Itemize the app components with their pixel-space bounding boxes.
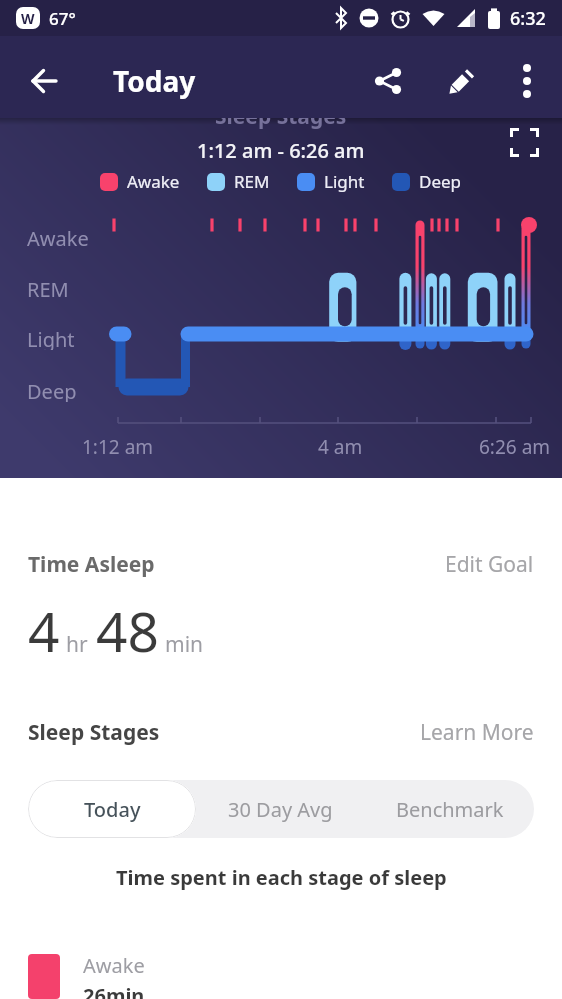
staticText: 1:12 am - 6:26 am <box>197 137 365 164</box>
staticText: 30 Day Avg <box>228 796 333 823</box>
button[interactable] <box>504 122 544 162</box>
button[interactable]: Learn More <box>420 718 534 747</box>
staticText: 4 <box>28 593 60 668</box>
button[interactable]: 30 Day Avg <box>196 780 365 838</box>
staticText: 48 <box>96 593 159 668</box>
staticText: 4 am <box>318 434 363 460</box>
staticText: Deep <box>27 378 77 402</box>
staticText: 26min <box>83 982 145 999</box>
staticText: Sleep Stages <box>215 118 347 131</box>
staticText: 1:12 am <box>82 434 154 460</box>
staticText: Awake <box>27 225 89 249</box>
staticText: Today <box>84 796 141 823</box>
staticText: Awake <box>127 170 180 193</box>
staticText: 6:26 am <box>479 434 551 460</box>
staticText: Deep <box>419 170 462 193</box>
button[interactable] <box>501 44 553 118</box>
staticText: Awake <box>83 952 145 979</box>
staticText: Edit Goal <box>445 550 534 579</box>
staticText: 67° <box>49 7 76 30</box>
staticText: 6:32 <box>510 6 546 31</box>
staticText: Time spent in each stage of sleep <box>116 864 447 891</box>
staticText: REM <box>234 170 270 193</box>
button[interactable]: Edit Goal <box>445 550 534 579</box>
staticText: Time Asleep <box>28 550 155 579</box>
staticText: min <box>165 630 204 659</box>
staticText: REM <box>27 276 69 300</box>
staticText: Today <box>113 62 196 100</box>
staticText: Sleep Stages <box>28 718 160 747</box>
staticText: Light <box>324 170 365 193</box>
staticText: hr <box>66 630 88 659</box>
staticText: Learn More <box>420 718 534 747</box>
button[interactable] <box>0 44 88 118</box>
staticText: W <box>21 9 35 28</box>
staticText: Light <box>27 326 75 350</box>
button[interactable]: Benchmark <box>365 780 534 838</box>
button[interactable]: Today <box>28 780 196 838</box>
button[interactable] <box>360 44 416 118</box>
staticText: Benchmark <box>396 796 504 823</box>
button[interactable] <box>433 44 489 118</box>
